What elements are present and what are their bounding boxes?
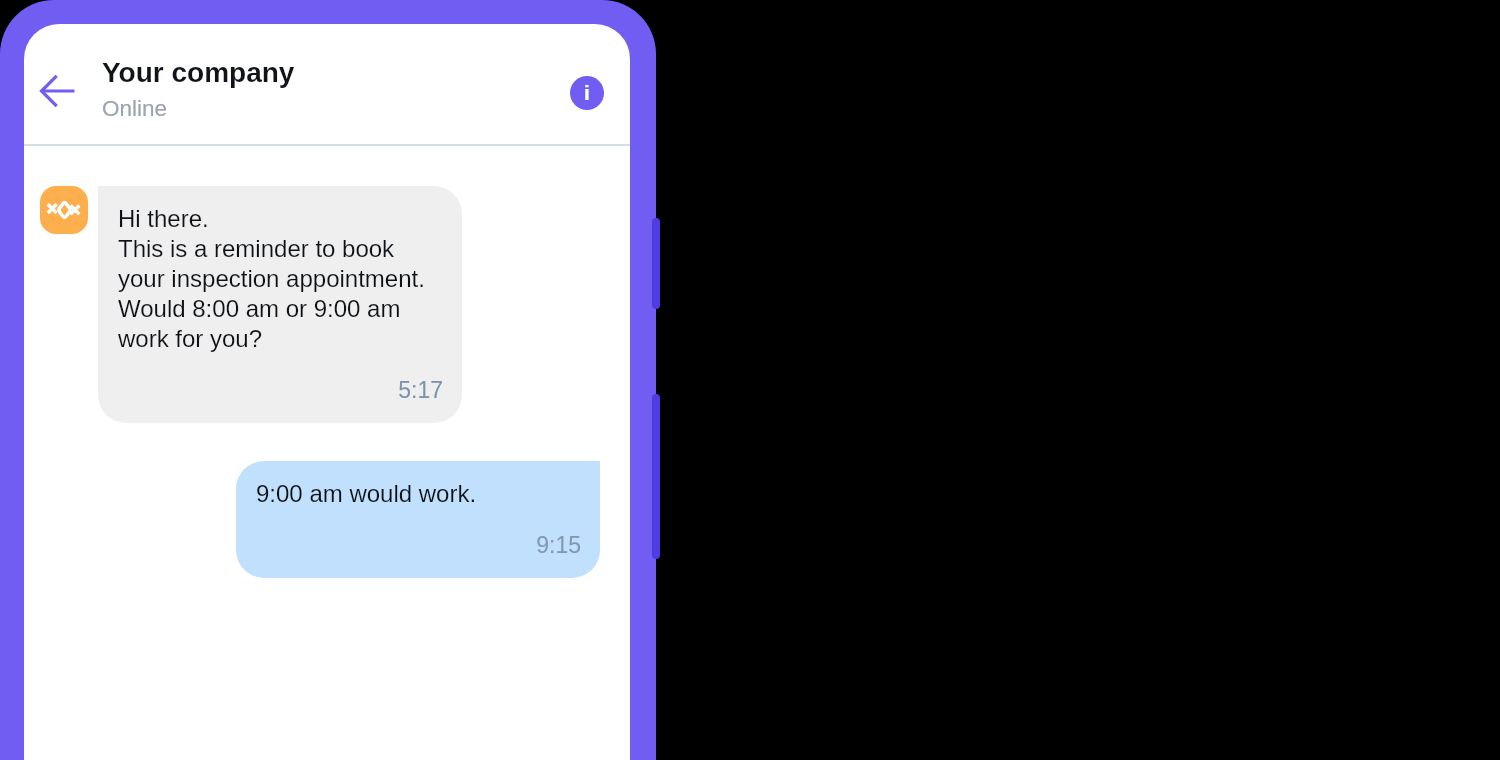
button[interactable]: Info (570, 76, 604, 110)
staticText: i (584, 81, 590, 104)
button[interactable]: 9:00 am would work. (236, 461, 600, 578)
staticText: 5:17 (118, 377, 443, 403)
button[interactable]: Hi there. This is a reminder to book you… (98, 186, 462, 423)
staticText: 9:15 (256, 532, 581, 558)
staticText: 9:00 am would work. (256, 480, 477, 507)
staticText: Your company (102, 57, 295, 88)
staticText: Hi there. This is a reminder to book you… (118, 205, 425, 352)
staticText: Online (102, 96, 168, 121)
button[interactable]: Back (16, 67, 88, 115)
